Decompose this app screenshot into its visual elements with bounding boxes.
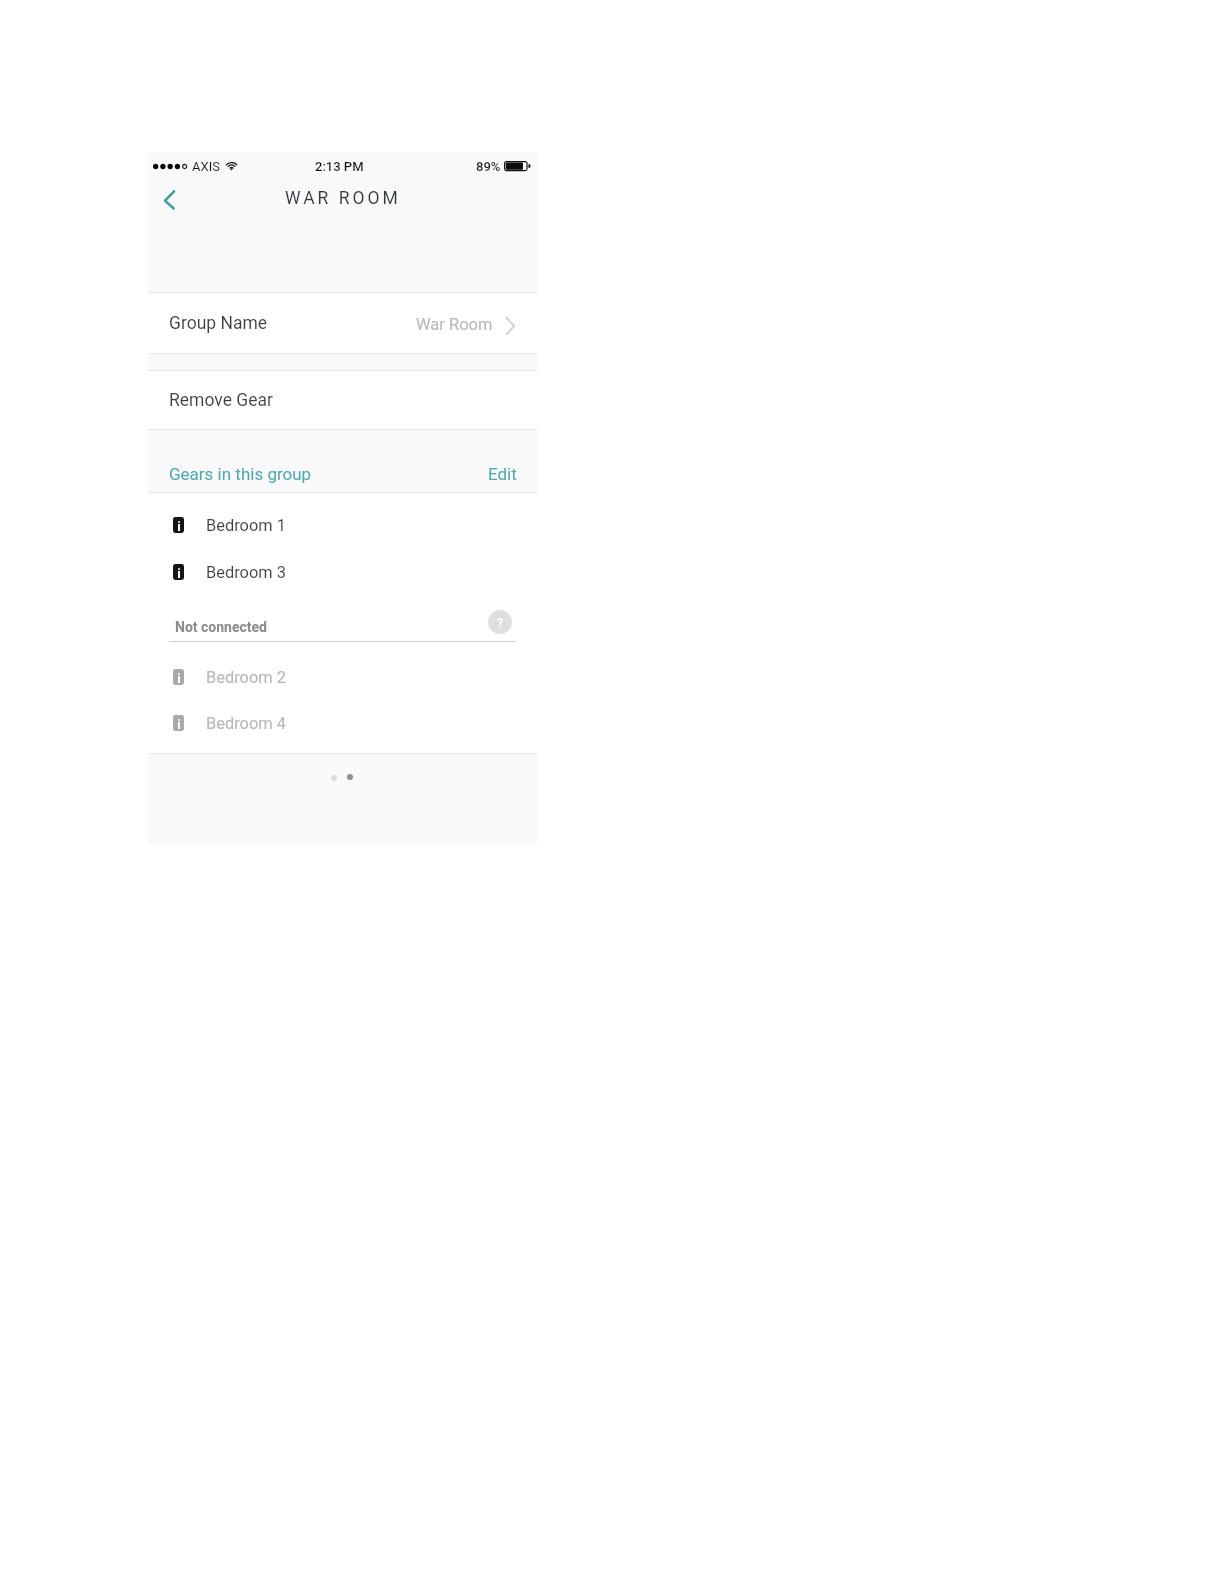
- button[interactable]: Gears in this group: [148, 454, 468, 488]
- button[interactable]: Group Name: [148, 293, 537, 353]
- staticText: WAR ROOM: [285, 188, 401, 209]
- staticText: Bedroom 4: [206, 714, 286, 733]
- staticText: 2:13 PM: [315, 159, 364, 174]
- staticText: AXIS: [192, 159, 220, 174]
- staticText: Group Name: [169, 313, 268, 334]
- staticText: ?: [497, 615, 504, 630]
- button[interactable]: Remove Gear: [148, 371, 537, 429]
- staticText: Gears in this group: [169, 464, 312, 484]
- button[interactable]: Bedroom 4: [148, 699, 537, 746]
- staticText: Edit: [488, 464, 517, 484]
- button[interactable]: Bedroom 1: [148, 501, 537, 548]
- staticText: Not connected: [175, 619, 267, 635]
- button[interactable]: Help: [488, 610, 512, 634]
- staticText: Bedroom 3: [206, 563, 286, 582]
- button[interactable]: Edit: [474, 454, 529, 488]
- button[interactable]: Back: [148, 175, 200, 220]
- staticText: 89%: [476, 159, 501, 174]
- staticText: Remove Gear: [169, 390, 273, 411]
- staticText: Bedroom 1: [206, 516, 286, 535]
- staticText: War Room: [416, 315, 493, 334]
- staticText: Bedroom 2: [206, 668, 286, 687]
- button[interactable]: Bedroom 3: [148, 548, 537, 595]
- button[interactable]: Bedroom 2: [148, 653, 537, 700]
